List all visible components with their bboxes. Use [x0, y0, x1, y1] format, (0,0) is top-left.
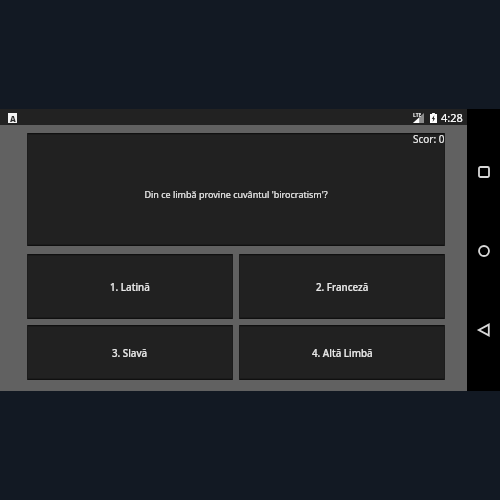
button[interactable]: Back	[467, 313, 500, 346]
staticText: 2. Franceză	[316, 281, 369, 294]
staticText: 1. Latină	[110, 281, 150, 294]
button[interactable]: Recent apps	[467, 155, 500, 188]
staticText: Scor: 0	[413, 132, 445, 146]
staticText: 4:28	[441, 110, 463, 125]
staticText: LTE	[413, 112, 422, 119]
button[interactable]: Scor: 0	[27, 133, 445, 246]
button[interactable]: Home	[467, 234, 500, 267]
staticText: Din ce limbă provine cuvântul 'birocrati…	[144, 188, 328, 200]
button[interactable]: 4. Altă Limbă	[239, 325, 445, 380]
staticText: A	[10, 113, 16, 123]
button[interactable]: 2. Franceză	[239, 254, 445, 319]
staticText: 3. Slavă	[112, 347, 148, 360]
button[interactable]: 3. Slavă	[27, 325, 233, 380]
staticText: 4. Altă Limbă	[312, 347, 373, 360]
button[interactable]: 1. Latină	[27, 254, 233, 319]
